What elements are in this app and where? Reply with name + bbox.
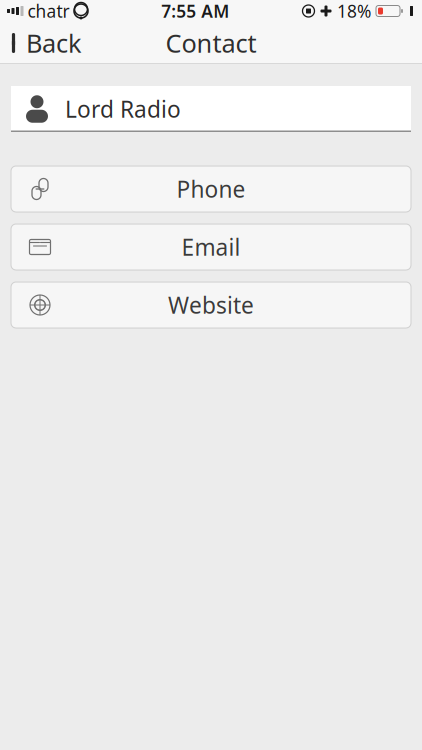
- staticText: Website: [168, 290, 254, 320]
- staticText: Lord Radio: [65, 94, 181, 124]
- staticText: Contact: [165, 26, 256, 60]
- button[interactable]: Website: [11, 282, 411, 328]
- staticText: Phone: [176, 174, 245, 204]
- staticText: Back: [26, 26, 82, 60]
- button[interactable]: Back: [0, 22, 90, 64]
- staticText: chatr: [27, 0, 69, 22]
- staticText: 7:55 AM: [161, 0, 229, 22]
- button[interactable]: Lord Radio: [11, 86, 411, 132]
- button[interactable]: Email: [11, 224, 411, 270]
- staticText: 18%: [337, 0, 371, 22]
- button[interactable]: Phone: [11, 166, 411, 212]
- staticText: Email: [181, 232, 240, 262]
